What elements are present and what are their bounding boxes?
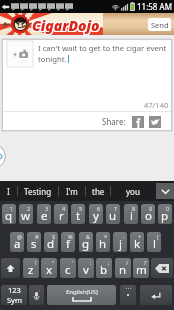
staticText: f bbox=[66, 236, 70, 252]
staticText: I bbox=[7, 186, 10, 197]
button[interactable]: b bbox=[96, 258, 112, 278]
staticText: ; bbox=[108, 259, 110, 266]
staticText: w bbox=[21, 208, 31, 224]
staticText: l bbox=[153, 236, 156, 252]
staticText: r bbox=[59, 208, 64, 224]
button[interactable]: a bbox=[10, 232, 24, 252]
staticText: 47/140 bbox=[144, 100, 169, 110]
staticText: o bbox=[145, 208, 152, 224]
staticText: n bbox=[119, 262, 127, 278]
button[interactable]: Shift bbox=[1, 258, 20, 278]
button[interactable]: n bbox=[115, 258, 131, 278]
button[interactable]: Period bbox=[120, 285, 136, 305]
button[interactable]: t bbox=[71, 204, 85, 224]
button[interactable]: k bbox=[130, 232, 144, 252]
staticText: t bbox=[76, 208, 81, 224]
staticText: " bbox=[52, 259, 55, 266]
button[interactable]: z bbox=[23, 258, 39, 278]
button[interactable]: f bbox=[61, 232, 75, 252]
button[interactable]: p bbox=[158, 204, 172, 224]
staticText: Share: bbox=[102, 116, 126, 127]
staticText: 11:58 AM bbox=[137, 1, 172, 12]
button[interactable]: More suggestions bbox=[156, 183, 174, 199]
button[interactable]: Share to Facebook bbox=[132, 116, 144, 128]
button[interactable]: c bbox=[60, 258, 76, 278]
staticText: CigarDojo bbox=[32, 15, 100, 34]
button[interactable]: h bbox=[96, 232, 110, 252]
staticText: Send bbox=[151, 20, 169, 30]
button[interactable]: Share to Twitter bbox=[149, 116, 161, 128]
staticText: CigarDojo bbox=[31, 15, 99, 34]
staticText: CigarDojo bbox=[32, 16, 100, 35]
staticText: 9 bbox=[149, 205, 153, 212]
button[interactable]: Enter bbox=[140, 285, 172, 305]
staticText: 1 bbox=[10, 205, 14, 212]
button[interactable]: Voice input bbox=[29, 285, 44, 305]
button[interactable]: the bbox=[85, 181, 111, 201]
staticText: b bbox=[100, 262, 108, 278]
staticText: c bbox=[65, 262, 71, 278]
staticText: 3 bbox=[45, 205, 49, 212]
button[interactable]: o bbox=[141, 204, 155, 224]
button[interactable]: Space bbox=[47, 285, 116, 305]
button[interactable]: d bbox=[44, 232, 58, 252]
staticText: g bbox=[82, 236, 90, 252]
staticText: % bbox=[68, 233, 73, 240]
button[interactable]: I bbox=[0, 181, 17, 201]
staticText: * bbox=[104, 233, 108, 240]
staticText: i bbox=[130, 208, 133, 224]
staticText: CigarDojo bbox=[31, 16, 99, 35]
button[interactable]: g bbox=[79, 232, 93, 252]
button[interactable]: w bbox=[19, 204, 33, 224]
staticText: + bbox=[138, 233, 142, 240]
button[interactable]: u bbox=[106, 204, 120, 224]
button[interactable]: y bbox=[89, 204, 103, 224]
staticText: : bbox=[90, 259, 92, 266]
staticText: CigarDojo bbox=[33, 16, 101, 35]
button[interactable]: Back bbox=[0, 13, 11, 35]
staticText: & bbox=[86, 233, 91, 240]
staticText: a bbox=[14, 236, 21, 252]
button[interactable]: Testing bbox=[17, 181, 58, 201]
staticText: CigarDojo bbox=[32, 16, 100, 35]
staticText: u bbox=[109, 208, 117, 224]
staticText: CigarDojo bbox=[31, 17, 99, 36]
button[interactable]: j bbox=[113, 232, 127, 252]
staticText: ' bbox=[72, 259, 74, 266]
staticText: 5 bbox=[79, 205, 83, 212]
staticText: I can't wait to get to the cigar event bbox=[38, 43, 167, 54]
button[interactable]: you bbox=[110, 181, 156, 201]
staticText: z bbox=[28, 262, 34, 278]
staticText: English(US) bbox=[66, 288, 98, 296]
button[interactable]: Symbols bbox=[1, 285, 27, 305]
button[interactable]: v bbox=[78, 258, 94, 278]
staticText: - bbox=[123, 233, 125, 240]
staticText: p bbox=[161, 208, 169, 224]
staticText: 123 bbox=[8, 285, 21, 295]
staticText: # bbox=[35, 233, 39, 240]
staticText: you bbox=[126, 186, 140, 197]
button[interactable]: x bbox=[41, 258, 57, 278]
button[interactable]: Backspace bbox=[151, 258, 173, 278]
button[interactable]: Expand bbox=[0, 144, 6, 169]
button[interactable]: e bbox=[37, 204, 51, 224]
staticText: ? bbox=[144, 259, 147, 266]
staticText: $ bbox=[52, 233, 56, 240]
staticText: v bbox=[83, 262, 89, 278]
button[interactable]: I'm bbox=[58, 181, 85, 201]
button[interactable]: r bbox=[54, 204, 68, 224]
button[interactable]: s bbox=[27, 232, 41, 252]
staticText: 2 bbox=[27, 205, 31, 212]
staticText: e bbox=[41, 208, 48, 224]
staticText: j bbox=[119, 236, 122, 252]
staticText: 0 bbox=[166, 205, 170, 212]
button[interactable]: i bbox=[124, 204, 138, 224]
button[interactable]: m bbox=[133, 258, 149, 278]
staticText: m bbox=[136, 262, 147, 278]
staticText: CigarDojo bbox=[33, 17, 101, 36]
button[interactable]: l bbox=[147, 232, 161, 252]
staticText: q bbox=[5, 208, 13, 224]
button[interactable]: q bbox=[2, 204, 16, 224]
button[interactable]: Add photo bbox=[7, 41, 33, 67]
button[interactable]: Send bbox=[148, 18, 171, 31]
